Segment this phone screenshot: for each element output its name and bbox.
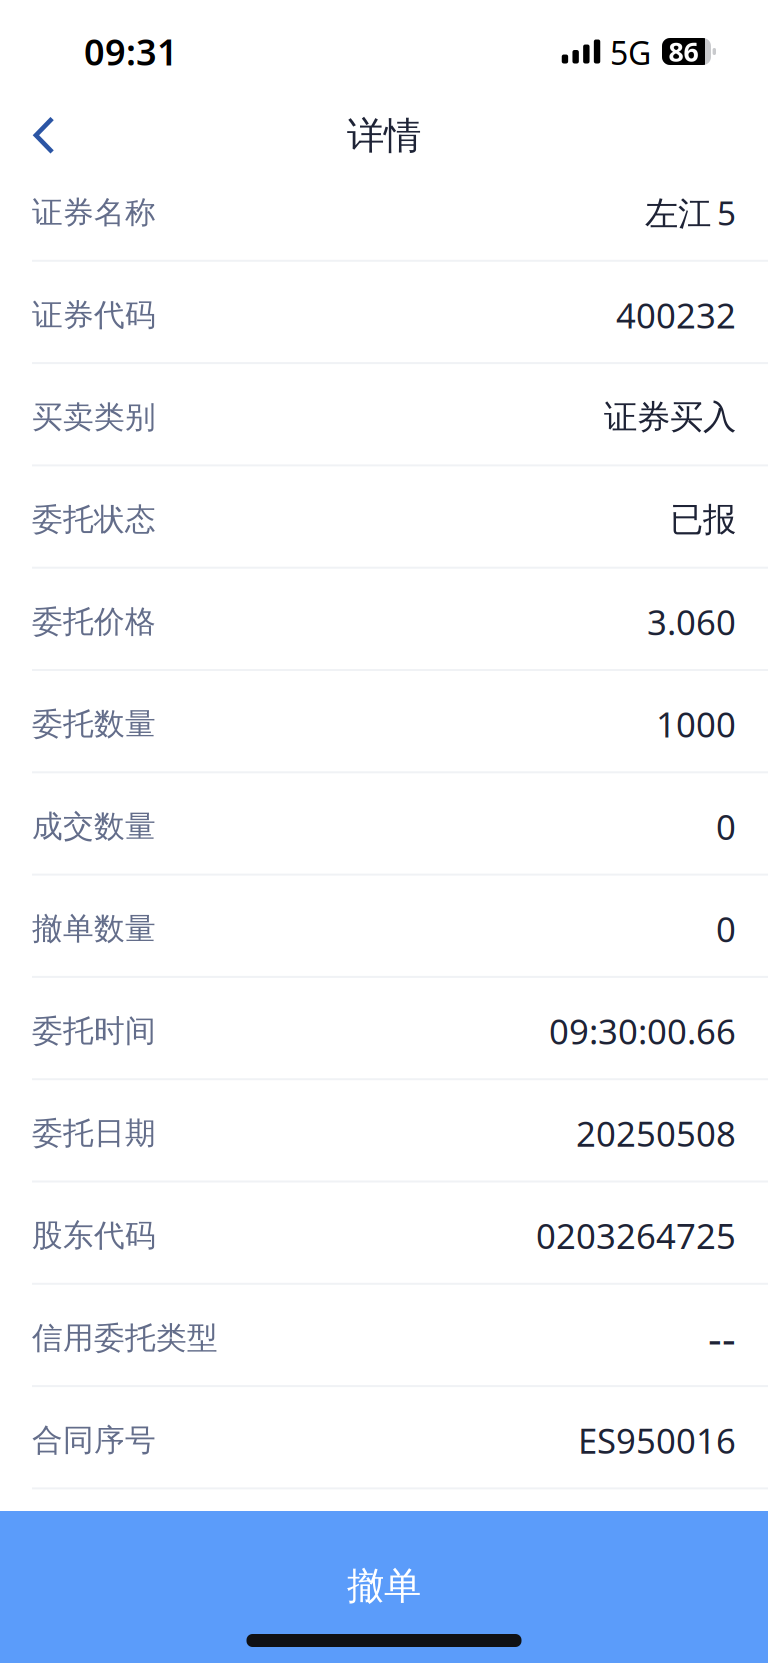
- staticText: 买卖类别: [32, 398, 156, 436]
- staticText: 86: [668, 34, 698, 69]
- button[interactable]: 撤单: [0, 1511, 768, 1663]
- staticText: 委托时间: [32, 1012, 156, 1050]
- staticText: 成交数量: [32, 808, 156, 845]
- staticText: 撤单: [347, 1563, 421, 1609]
- staticText: 3.060: [647, 599, 736, 645]
- staticText: 已报: [670, 499, 736, 540]
- staticText: 委托价格: [32, 603, 156, 641]
- staticText: 委托日期: [32, 1114, 156, 1152]
- staticText: 20250508: [576, 1110, 736, 1156]
- staticText: 证券买入: [604, 397, 736, 438]
- staticText: 5G: [610, 31, 651, 74]
- staticText: 合同序号: [32, 1421, 156, 1459]
- staticText: 1000: [656, 701, 736, 747]
- staticText: 09:31: [84, 28, 178, 75]
- staticText: ES950016: [578, 1417, 736, 1463]
- staticText: 0203264725: [536, 1213, 736, 1259]
- staticText: 撤单数量: [32, 910, 156, 948]
- button[interactable]: 返回: [13, 105, 75, 159]
- staticText: 400232: [616, 292, 736, 338]
- staticText: 信用委托类型: [32, 1319, 218, 1357]
- staticText: 证券名称: [32, 194, 156, 231]
- staticText: 0: [716, 906, 736, 952]
- staticText: 09:30:00.66: [549, 1008, 736, 1054]
- staticText: 证券代码: [32, 296, 156, 334]
- staticText: 委托数量: [32, 705, 156, 743]
- staticText: 股东代码: [32, 1217, 156, 1254]
- staticText: 委托状态: [32, 501, 156, 538]
- staticText: 详情: [347, 113, 421, 159]
- staticText: 0: [716, 803, 736, 849]
- staticText: --: [708, 1310, 736, 1366]
- staticText: 左江 5: [645, 190, 736, 235]
